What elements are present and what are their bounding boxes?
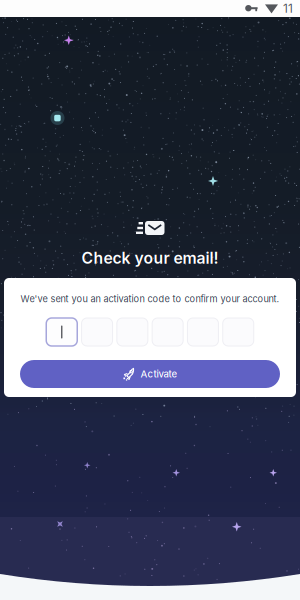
staticText: Check your email! bbox=[81, 248, 218, 267]
staticText: Activate bbox=[140, 368, 177, 380]
button[interactable]: Activate bbox=[20, 360, 280, 388]
button[interactable]: Activation code digit bbox=[46, 318, 77, 346]
staticText: 11 bbox=[283, 1, 293, 16]
staticText: We've sent you an activation code to con… bbox=[20, 293, 279, 304]
